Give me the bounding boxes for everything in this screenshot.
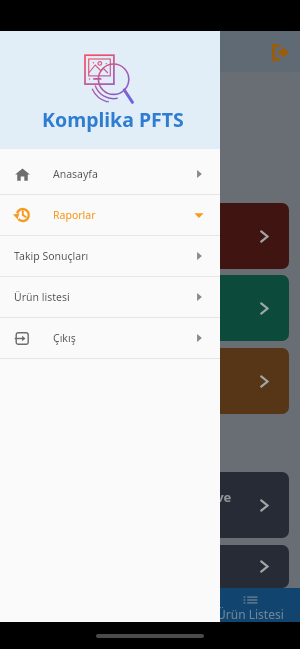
staticText: Komplika PFTS (42, 106, 184, 133)
button[interactable]: Takip Listesinde Bulunan Aktive (11, 472, 289, 538)
staticText: Raporlar (53, 208, 96, 222)
staticText: Takip Sonuçları (25, 299, 124, 317)
staticText: Takip Listesinde Bulunan Aktive (25, 488, 232, 506)
button[interactable]: Ürün Listesi (11, 348, 289, 414)
button[interactable]: Ürün listesi (0, 277, 220, 317)
button[interactable]: Çıkış (0, 318, 220, 358)
button[interactable]: Raporlar (0, 195, 220, 235)
button[interactable]: Takip Sonuçları (11, 275, 289, 341)
button[interactable]: Anasayfa (0, 154, 220, 194)
button[interactable]: Ürünler (11, 545, 289, 588)
staticText: Ürün listesi (14, 290, 70, 304)
button[interactable]: Takip Sonuçları (0, 236, 220, 276)
staticText: Çıkış (53, 331, 76, 345)
staticText: Anasayfa (53, 167, 98, 181)
staticText: Takip Sonuçları (14, 249, 89, 263)
button[interactable]: Ürün Listesi (200, 588, 300, 622)
button[interactable]: Raporlar (11, 203, 289, 269)
button[interactable]: Logout (268, 40, 292, 64)
staticText: Raporlar (25, 227, 81, 245)
staticText: Ürün Listesi (217, 606, 284, 622)
